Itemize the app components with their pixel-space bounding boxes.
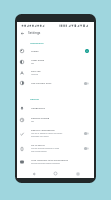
staticText: Font size xyxy=(31,70,41,73)
button[interactable]: Night mode xyxy=(17,56,94,67)
button[interactable]: Low contrast fonts xyxy=(17,78,94,88)
button[interactable]: Notifications xyxy=(17,102,94,114)
staticText: Night mode xyxy=(31,59,45,62)
staticText: Normal xyxy=(31,73,39,76)
button[interactable]: Back xyxy=(18,29,26,37)
button[interactable]: Auto compress MMS attachments xyxy=(17,156,94,168)
button[interactable]: Home xyxy=(51,169,60,178)
staticText: Tilt the phone forward to hide the conve… xyxy=(31,147,60,153)
button[interactable]: Delayed sending xyxy=(17,114,94,126)
staticText: Delayed sending xyxy=(31,117,50,120)
staticText: Settings xyxy=(28,31,41,35)
button[interactable]: Theme xyxy=(17,46,94,56)
staticText: Low contrast fonts xyxy=(31,82,52,85)
button[interactable]: Back xyxy=(29,169,38,178)
button[interactable]: Recent apps xyxy=(73,169,82,178)
staticText: Delivery confirmation xyxy=(31,129,55,132)
staticText: General xyxy=(30,97,39,100)
staticText: Off xyxy=(31,120,34,123)
button[interactable]: Delivery confirmation xyxy=(17,126,94,141)
staticText: Theme xyxy=(31,50,39,53)
staticText: Notifications xyxy=(31,107,46,110)
staticText: Off xyxy=(31,62,34,65)
button[interactable]: Font size xyxy=(17,67,94,78)
staticText: Auto compress MMS attachments xyxy=(31,159,68,162)
staticText: Appearance xyxy=(30,41,44,44)
staticText: Ask for a delivery report for every mess… xyxy=(31,132,63,138)
button[interactable]: Tilt to secret xyxy=(17,141,94,156)
staticText: Tilt to secret xyxy=(31,144,45,147)
staticText: Shrink pictures before sending xyxy=(31,162,60,165)
